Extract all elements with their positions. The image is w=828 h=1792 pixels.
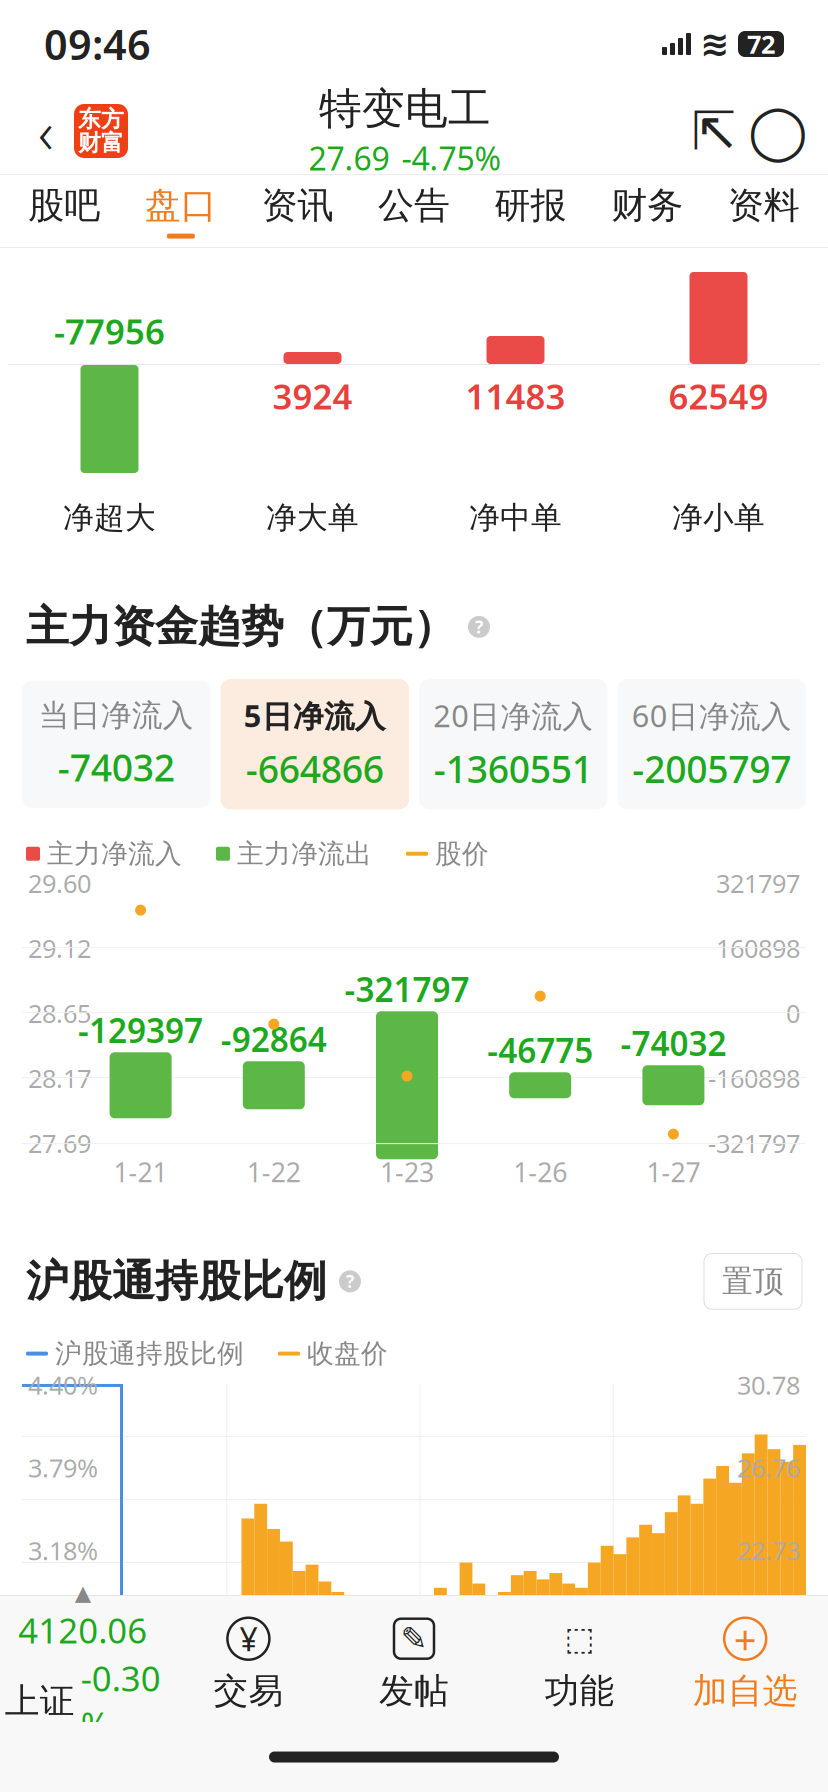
- staticText: -129397: [78, 1008, 203, 1052]
- staticText: 净超大: [63, 499, 156, 537]
- staticText: 20日净流入: [433, 695, 593, 736]
- staticText: 特变电工: [319, 82, 491, 135]
- button[interactable]: 东方财富: [74, 104, 128, 158]
- staticText: -1360551: [434, 744, 593, 793]
- button[interactable]: 搜索: [746, 99, 810, 163]
- staticText: 主力净流出: [237, 837, 372, 870]
- staticText: 当日净流入: [39, 697, 194, 734]
- staticText: ‹: [38, 92, 54, 170]
- staticText: 沪股通持股比例: [26, 1255, 327, 1308]
- staticText: 研报: [495, 183, 567, 228]
- staticText: 27.69: [28, 1126, 91, 1160]
- staticText: 净小单: [672, 499, 765, 537]
- staticText: 29.60: [28, 866, 91, 900]
- staticText: 4120.06: [18, 1607, 147, 1653]
- staticText: 功能: [545, 1670, 615, 1712]
- staticText: 27.69: [308, 137, 389, 179]
- staticText: 股价: [435, 837, 489, 870]
- button[interactable]: ▲: [0, 1581, 166, 1747]
- staticText: 财务: [611, 183, 683, 228]
- button[interactable]: 财务: [589, 175, 705, 247]
- staticText: 60日净流入: [632, 695, 792, 736]
- staticText: 72: [747, 27, 775, 61]
- staticText: -46775: [487, 1028, 593, 1072]
- staticText: -92864: [221, 1017, 327, 1061]
- staticText: -74032: [620, 1021, 726, 1065]
- staticText: 股吧: [28, 183, 100, 228]
- staticText: -321797: [708, 1126, 800, 1160]
- button[interactable]: 股吧: [6, 175, 123, 247]
- button[interactable]: 60日净流入: [617, 679, 806, 809]
- button[interactable]: 5日净流入: [220, 679, 409, 809]
- staticText: -321797: [344, 967, 469, 1011]
- button[interactable]: +: [662, 1616, 828, 1712]
- staticText: ⬚: [565, 1620, 595, 1657]
- staticText: 上证: [5, 1680, 75, 1722]
- staticText: 主力资金趋势（万元）: [26, 601, 456, 653]
- staticText: 4.40%: [28, 1368, 98, 1402]
- staticText: 置顶: [722, 1262, 784, 1300]
- staticText: 资料: [728, 183, 800, 228]
- button[interactable]: 置顶: [704, 1253, 802, 1309]
- staticText: -160898: [708, 1061, 800, 1095]
- staticText: ≋: [700, 24, 729, 64]
- staticText: 30.78: [737, 1368, 800, 1402]
- staticText: 1-21: [114, 1154, 168, 1189]
- staticText: 净大单: [266, 499, 359, 537]
- staticText: 主力净流入: [47, 837, 182, 870]
- staticText: 18.71: [737, 1616, 800, 1650]
- staticText: 1-22: [247, 1154, 301, 1189]
- staticText: 26.76: [737, 1451, 800, 1484]
- staticText: 3924: [272, 373, 352, 419]
- staticText: ✎: [400, 1620, 427, 1657]
- button[interactable]: 20日净流入: [419, 679, 607, 809]
- staticText: 11483: [465, 373, 565, 419]
- button[interactable]: ✎: [331, 1616, 497, 1712]
- button[interactable]: ¥: [166, 1616, 331, 1712]
- staticText: ◯: [748, 101, 808, 161]
- staticText: 28.65: [28, 996, 91, 1030]
- staticText: -74032: [58, 742, 175, 792]
- button[interactable]: 盘口: [123, 175, 239, 247]
- staticText: 2.57%: [28, 1616, 98, 1650]
- staticText: 东方: [78, 105, 124, 133]
- staticText: ?: [475, 615, 483, 638]
- staticText: 交易: [213, 1670, 283, 1712]
- staticText: 0: [786, 996, 800, 1030]
- staticText: 160898: [716, 931, 800, 965]
- staticText: 3.79%: [28, 1451, 98, 1484]
- staticText: +: [734, 1612, 757, 1665]
- staticText: 62549: [668, 373, 768, 419]
- staticText: 财富: [78, 129, 124, 157]
- staticText: -77956: [54, 308, 165, 354]
- button[interactable]: 当日净流入: [22, 681, 210, 808]
- staticText: 22.73: [737, 1533, 800, 1567]
- button[interactable]: 资讯: [239, 175, 356, 247]
- button[interactable]: 说明: [468, 616, 490, 638]
- staticText: 1-26: [513, 1154, 567, 1189]
- staticText: ⇱: [691, 101, 736, 161]
- button[interactable]: ⬚: [497, 1616, 662, 1712]
- button[interactable]: 说明: [339, 1270, 361, 1292]
- button[interactable]: 返回: [18, 100, 74, 162]
- button[interactable]: 分享: [682, 99, 746, 163]
- staticText: 资讯: [261, 183, 333, 228]
- staticText: 28.17: [28, 1061, 91, 1095]
- button[interactable]: 研报: [472, 175, 589, 247]
- staticText: 发帖: [379, 1670, 449, 1712]
- button[interactable]: 资料: [705, 175, 822, 247]
- staticText: 公告: [378, 183, 450, 228]
- staticText: -0.30%: [81, 1655, 161, 1747]
- staticText: ?: [346, 1270, 354, 1293]
- staticText: -4.75%: [401, 137, 501, 179]
- staticText: 1-27: [646, 1154, 700, 1189]
- staticText: 29.12: [28, 931, 91, 965]
- staticText: 3.18%: [28, 1533, 98, 1567]
- staticText: 321797: [716, 866, 800, 900]
- staticText: ▲: [75, 1581, 91, 1605]
- staticText: 加自选: [693, 1670, 798, 1712]
- button[interactable]: 公告: [356, 175, 472, 247]
- staticText: ¥: [239, 1617, 257, 1660]
- staticText: 1-23: [380, 1154, 434, 1189]
- staticText: 5日净流入: [244, 695, 386, 736]
